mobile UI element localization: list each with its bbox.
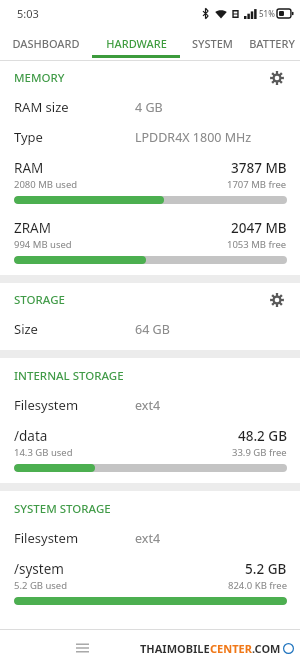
staticText: ext4: [135, 397, 161, 414]
staticText: RAM: [14, 159, 44, 177]
staticText: 5.2 GB used: [14, 579, 68, 592]
button[interactable]: Size: [0, 314, 300, 344]
button[interactable]: Settings: [266, 67, 288, 89]
staticText: Size: [14, 320, 135, 338]
staticText: 1707 MB free: [227, 178, 287, 191]
button[interactable]: RAM size: [0, 92, 300, 122]
staticText: 14.3 GB used: [14, 446, 73, 459]
staticText: SYSTEM: [192, 36, 233, 51]
staticText: CENTER: [210, 641, 252, 656]
staticText: 994 MB used: [14, 238, 72, 251]
staticText: 3787 MB: [231, 159, 287, 177]
button[interactable]: Menu: [68, 634, 96, 662]
button[interactable]: /data: [0, 422, 300, 479]
staticText: THAIMOBILE: [140, 641, 210, 656]
staticText: 64 GB: [135, 321, 170, 338]
button[interactable]: SYSTEM: [180, 27, 244, 60]
staticText: ext4: [135, 530, 161, 547]
staticText: 5:03: [17, 6, 39, 21]
staticText: INTERNAL STORAGE: [14, 368, 124, 384]
button[interactable]: Filesystem: [0, 523, 300, 553]
staticText: .COM: [252, 641, 281, 656]
staticText: /data: [14, 427, 48, 445]
staticText: Filesystem: [14, 396, 135, 414]
staticText: 5.2 GB: [245, 560, 287, 578]
staticText: 2080 MB used: [14, 178, 78, 191]
staticText: RAM size: [14, 98, 135, 116]
staticText: MEMORY: [14, 70, 65, 86]
button[interactable]: HARDWARE: [92, 27, 180, 60]
button[interactable]: RAM: [0, 154, 300, 211]
staticText: 2047 MB: [231, 219, 287, 237]
staticText: 33.9 GB free: [232, 446, 287, 459]
staticText: 4 GB: [135, 99, 163, 116]
button[interactable]: BATTERY: [244, 27, 300, 60]
staticText: LPDDR4X 1800 MHz: [135, 129, 252, 146]
staticText: DASHBOARD: [12, 36, 80, 51]
button[interactable]: Settings: [266, 289, 288, 311]
staticText: Type: [14, 128, 135, 146]
staticText: HARDWARE: [106, 36, 167, 51]
staticText: Filesystem: [14, 529, 135, 547]
staticText: 48.2 GB: [238, 427, 287, 445]
button[interactable]: /system: [0, 555, 300, 612]
button[interactable]: DASHBOARD: [0, 27, 92, 60]
staticText: ZRAM: [14, 219, 51, 237]
staticText: /system: [14, 560, 64, 578]
staticText: 824.0 KB free: [228, 579, 287, 592]
button[interactable]: ZRAM: [0, 214, 300, 271]
staticText: BATTERY: [249, 36, 295, 51]
staticText: 51%: [259, 8, 275, 19]
button[interactable]: Type: [0, 122, 300, 152]
staticText: 1053 MB free: [227, 238, 287, 251]
staticText: STORAGE: [14, 292, 65, 308]
staticText: SYSTEM STORAGE: [14, 501, 111, 517]
button[interactable]: Filesystem: [0, 390, 300, 420]
